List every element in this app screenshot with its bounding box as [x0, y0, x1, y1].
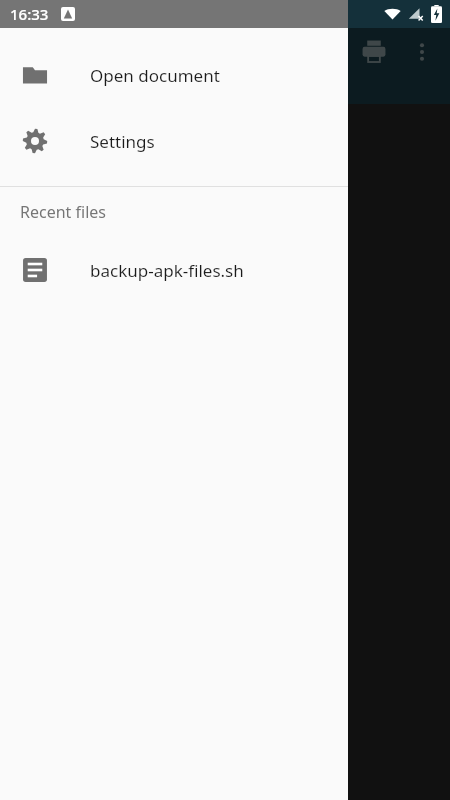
staticText: 16:33: [10, 4, 49, 24]
staticText: Recent files: [20, 201, 106, 223]
button[interactable]: Settings: [0, 108, 348, 174]
staticText: Settings: [90, 130, 155, 153]
button[interactable]: Print: [350, 28, 398, 76]
staticText: # bash backup.sh [--system-apps]: [0, 142, 63, 168]
staticText: Open document: [90, 64, 220, 87]
button[interactable]: backup-apk-files.sh: [0, 237, 348, 303]
button[interactable]: Open document: [0, 42, 348, 108]
staticText: backup-apk-files.sh: [90, 259, 244, 282]
staticText: # use --all to backup all: [0, 214, 40, 240]
button[interactable]: More options: [398, 28, 446, 76]
